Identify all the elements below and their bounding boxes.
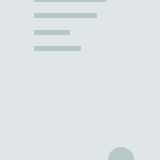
button[interactable]: Add (108, 147, 134, 160)
